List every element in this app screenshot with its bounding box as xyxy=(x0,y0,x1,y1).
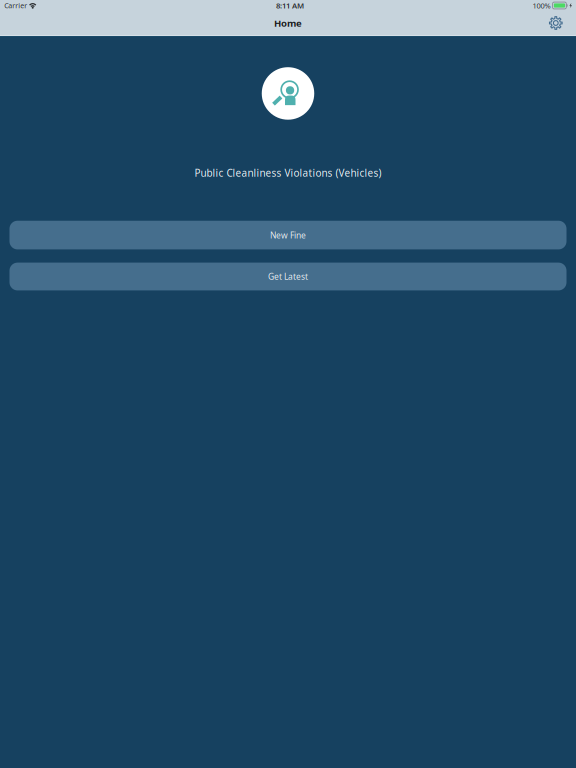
staticText: Get Latest xyxy=(268,271,308,282)
button[interactable]: Get Latest xyxy=(9,263,566,290)
staticText: New Fine xyxy=(270,229,306,241)
staticText: 100% xyxy=(532,0,550,11)
button[interactable]: Settings xyxy=(544,12,568,34)
staticText: Carrier xyxy=(4,1,27,10)
staticText: Public Cleanliness Violations (Vehicles) xyxy=(194,166,381,180)
button[interactable]: New Fine xyxy=(9,221,566,249)
staticText: Home xyxy=(274,16,302,30)
staticText: 8:11 AM xyxy=(276,0,304,11)
